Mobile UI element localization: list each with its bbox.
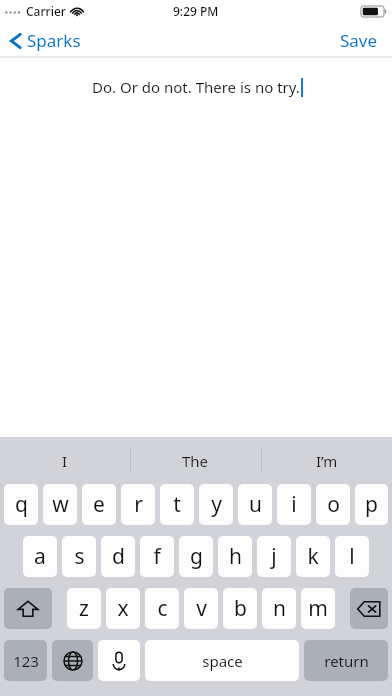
staticText: z: [79, 594, 89, 623]
button[interactable]: Dictate: [98, 640, 140, 681]
staticText: s: [74, 542, 85, 571]
staticText: a: [34, 542, 46, 571]
button[interactable]: t: [160, 484, 194, 525]
button[interactable]: f: [140, 536, 174, 577]
staticText: e: [93, 490, 105, 519]
staticText: Sparks: [27, 29, 81, 52]
staticText: 9:29 PM: [173, 3, 219, 19]
staticText: g: [190, 542, 203, 571]
button[interactable]: x: [106, 588, 140, 629]
button[interactable]: h: [218, 536, 252, 577]
button[interactable]: w: [43, 484, 77, 525]
button[interactable]: q: [4, 484, 38, 525]
staticText: p: [365, 490, 378, 519]
button[interactable]: r: [121, 484, 155, 525]
button[interactable]: p: [355, 484, 388, 525]
staticText: Carrier: [26, 3, 66, 19]
staticText: return: [324, 651, 369, 671]
staticText: x: [117, 594, 129, 623]
button[interactable]: m: [301, 588, 335, 629]
staticText: c: [157, 594, 168, 623]
button[interactable]: v: [184, 588, 218, 629]
button[interactable]: Save: [326, 23, 392, 58]
button[interactable]: Shift: [4, 588, 52, 629]
staticText: k: [307, 542, 319, 571]
button[interactable]: k: [296, 536, 330, 577]
staticText: f: [153, 542, 161, 571]
staticText: r: [134, 490, 143, 519]
button[interactable]: c: [145, 588, 179, 629]
button[interactable]: j: [257, 536, 291, 577]
button[interactable]: g: [179, 536, 213, 577]
staticText: Do. Or do not. There is no try.: [92, 77, 300, 97]
button[interactable]: o: [316, 484, 350, 525]
staticText: i: [291, 490, 297, 519]
button[interactable]: n: [262, 588, 296, 629]
staticText: l: [349, 542, 355, 571]
staticText: t: [173, 490, 181, 519]
staticText: y: [211, 490, 222, 519]
staticText: m: [308, 594, 328, 623]
button[interactable]: i: [277, 484, 311, 525]
button[interactable]: b: [223, 588, 257, 629]
staticText: o: [327, 490, 340, 519]
button[interactable]: u: [238, 484, 272, 525]
button[interactable]: Do. Or do not. There is no try.: [0, 58, 392, 437]
button[interactable]: y: [199, 484, 233, 525]
button[interactable]: Next keyboard: [52, 640, 93, 681]
staticText: q: [15, 490, 28, 519]
button[interactable]: I: [0, 437, 130, 484]
staticText: v: [196, 594, 207, 623]
staticText: j: [271, 542, 277, 571]
button[interactable]: return: [304, 640, 388, 681]
button[interactable]: The: [130, 437, 261, 484]
button[interactable]: 123: [4, 640, 47, 681]
staticText: u: [249, 490, 262, 519]
button[interactable]: space: [145, 640, 299, 681]
button[interactable]: z: [67, 588, 101, 629]
staticText: Save: [340, 29, 378, 52]
button[interactable]: s: [62, 536, 96, 577]
button[interactable]: Backspace: [350, 588, 388, 629]
staticText: b: [234, 594, 247, 623]
staticText: h: [229, 542, 242, 571]
button[interactable]: I’m: [261, 437, 392, 484]
staticText: I: [62, 451, 68, 471]
staticText: w: [52, 490, 69, 519]
button[interactable]: d: [101, 536, 135, 577]
button[interactable]: Sparks: [0, 25, 89, 56]
button[interactable]: l: [335, 536, 369, 577]
staticText: The: [182, 451, 209, 471]
staticText: I’m: [316, 451, 338, 471]
staticText: 123: [13, 651, 39, 671]
button[interactable]: a: [23, 536, 57, 577]
button[interactable]: e: [82, 484, 116, 525]
staticText: space: [202, 651, 243, 671]
staticText: n: [273, 594, 286, 623]
staticText: d: [112, 542, 125, 571]
